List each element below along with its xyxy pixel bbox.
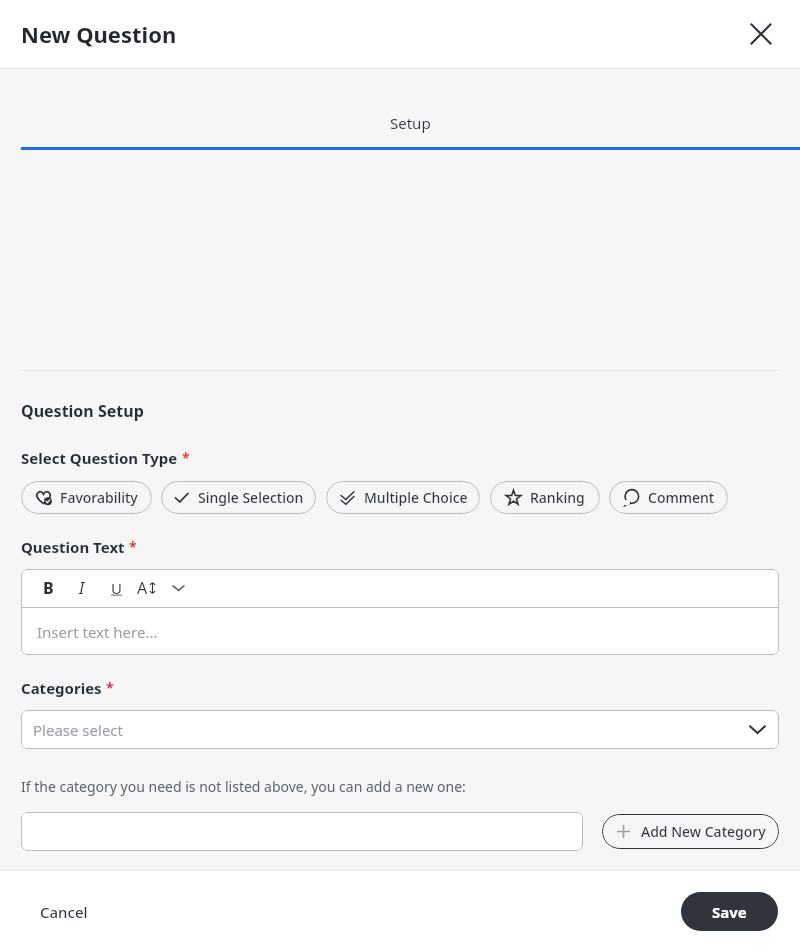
button[interactable]: Comment	[609, 481, 728, 514]
button[interactable]: Close	[739, 12, 783, 56]
button[interactable]: Bold	[35, 575, 61, 601]
button[interactable]: Italic	[69, 575, 95, 601]
staticText: *	[129, 537, 137, 556]
button[interactable]: Favorability	[21, 481, 152, 514]
staticText: *	[106, 678, 114, 697]
staticText: Insert text here...	[37, 622, 158, 642]
staticText: B	[43, 577, 54, 599]
staticText: Categories	[21, 678, 102, 698]
button[interactable]: More formatting options	[167, 577, 189, 599]
button[interactable]: Multiple Choice	[326, 481, 480, 514]
staticText: Please select	[33, 720, 750, 740]
staticText: If the category you need is not listed a…	[21, 777, 466, 796]
staticText: Single Selection	[198, 488, 304, 507]
staticText: I	[79, 577, 85, 599]
staticText: Cancel	[40, 902, 88, 922]
staticText: Comment	[648, 488, 715, 507]
staticText: A	[137, 577, 148, 599]
button[interactable]: Underline	[103, 575, 129, 601]
button[interactable]: Insert text here...	[21, 608, 779, 655]
staticText: Question Setup	[21, 400, 144, 422]
staticText: Multiple Choice	[364, 488, 468, 507]
staticText: Select Question Type	[21, 448, 178, 468]
button[interactable]: Save	[681, 892, 778, 931]
button[interactable]: Cancel	[40, 902, 88, 922]
button[interactable]: Setup	[21, 113, 800, 150]
button[interactable]: Ranking	[490, 481, 600, 514]
staticText: Add New Category	[641, 822, 766, 841]
staticText: New Question	[21, 19, 177, 49]
staticText: Ranking	[530, 488, 585, 507]
button[interactable]: Please select	[21, 710, 779, 749]
staticText: *	[182, 448, 190, 467]
button[interactable]: New category name	[21, 812, 583, 851]
button[interactable]: Font size	[137, 575, 157, 601]
button[interactable]: Single Selection	[161, 481, 316, 514]
staticText: Favorability	[60, 488, 138, 507]
button[interactable]: Add New Category	[602, 814, 779, 849]
staticText: Question Text	[21, 537, 125, 557]
staticText: Save	[712, 902, 747, 922]
staticText: U	[111, 578, 122, 598]
staticText: Setup	[390, 113, 431, 133]
